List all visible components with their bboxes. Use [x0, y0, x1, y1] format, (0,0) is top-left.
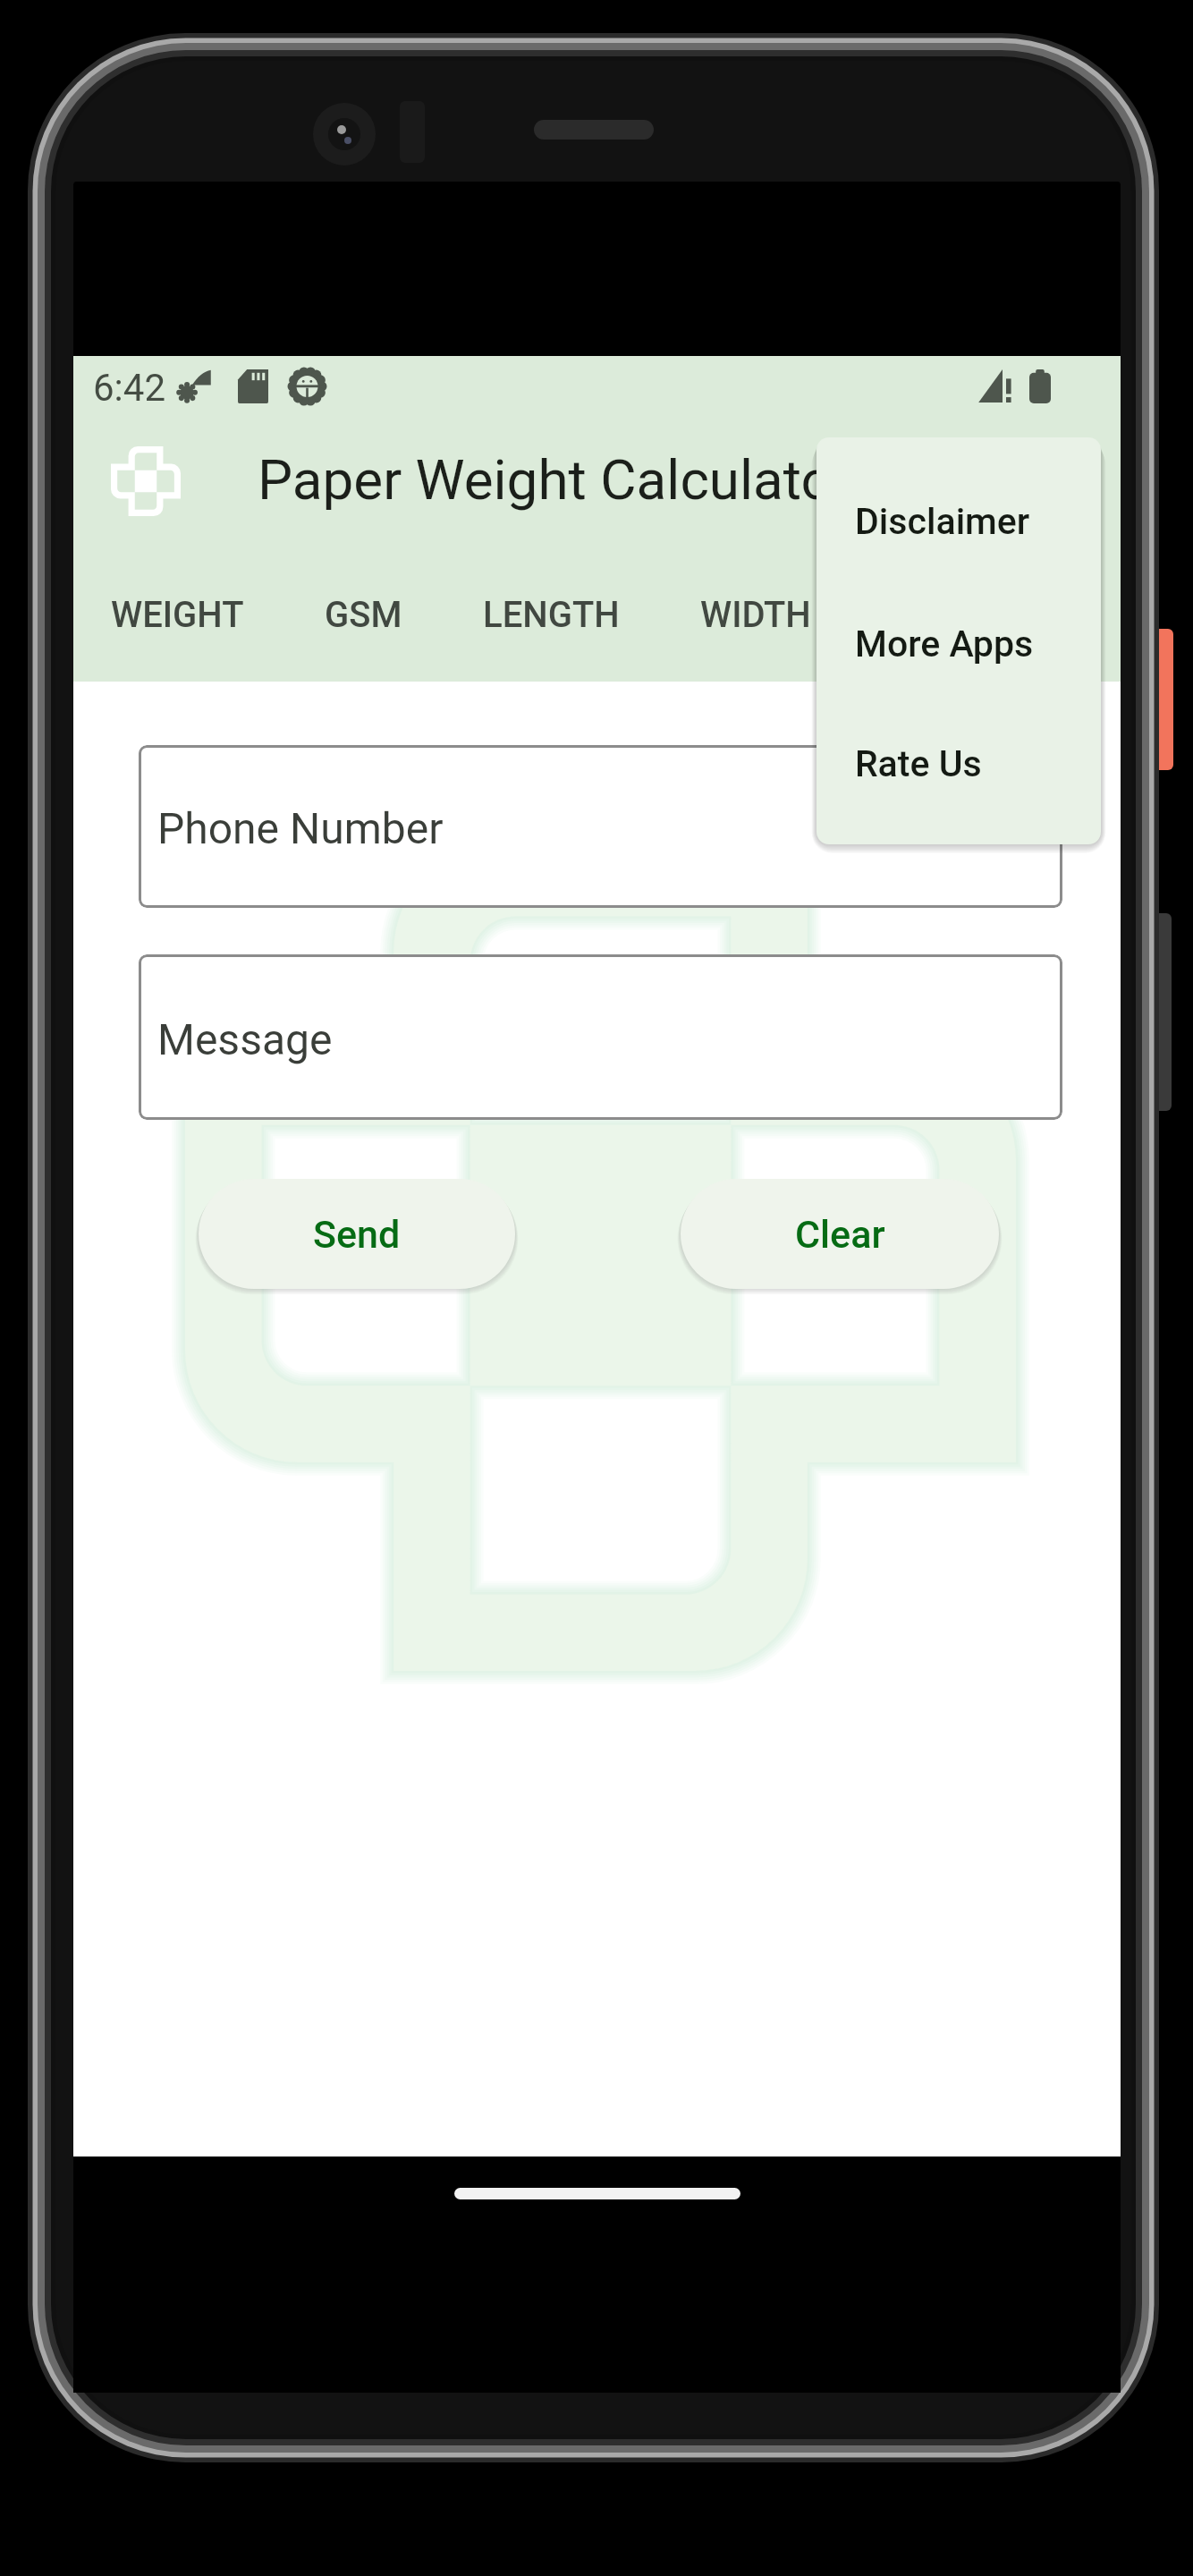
- button[interactable]: GSM: [284, 547, 443, 682]
- button[interactable]: More Apps: [816, 590, 1101, 698]
- button[interactable]: WIDTH: [660, 547, 851, 682]
- button[interactable]: Disclaimer: [816, 468, 1101, 575]
- button[interactable]: LENGTH: [443, 547, 660, 682]
- button[interactable]: Clear: [681, 1179, 999, 1289]
- button[interactable]: Send: [199, 1179, 515, 1289]
- staticText: Phone Number: [157, 803, 444, 853]
- button[interactable]: Paper Weight Calculator logo: [111, 446, 181, 516]
- staticText: LENGTH: [483, 594, 620, 636]
- staticText: Send: [313, 1212, 401, 1257]
- button[interactable]: Rate Us: [816, 710, 1101, 818]
- button[interactable]: Message: [139, 954, 1062, 1120]
- staticText: More Apps: [855, 623, 1034, 665]
- staticText: WEIGHT: [111, 594, 244, 636]
- staticText: Rate Us: [855, 742, 982, 785]
- button[interactable]: Phone Number: [139, 745, 1062, 908]
- staticText: Message: [157, 1014, 333, 1064]
- button[interactable]: WEIGHT: [71, 547, 284, 682]
- staticText: Paper Weight Calculator: [258, 447, 851, 513]
- staticText: Disclaimer: [855, 500, 1030, 543]
- staticText: WIDTH: [700, 594, 811, 636]
- staticText: 6:42: [93, 366, 165, 410]
- staticText: GSM: [325, 594, 402, 636]
- staticText: Clear: [795, 1212, 885, 1257]
